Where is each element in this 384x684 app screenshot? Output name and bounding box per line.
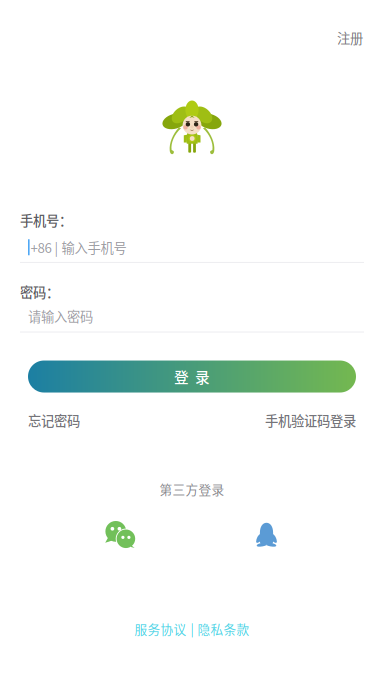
staticText: 第三方登录: [159, 480, 224, 498]
staticText: 登 录: [174, 366, 210, 387]
staticText: 手机验证码登录: [265, 410, 356, 430]
button[interactable]: 手机验证码登录: [265, 410, 356, 430]
staticText: 服务协议: [134, 620, 186, 638]
button[interactable]: QQ login: [256, 522, 278, 547]
staticText: 手机号：: [20, 210, 72, 230]
button[interactable]: 注册: [316, 19, 384, 56]
button[interactable]: 忘记密码: [28, 410, 80, 430]
staticText: 密码：: [20, 282, 59, 301]
staticText: |: [190, 620, 193, 638]
staticText: 请输入密码: [28, 306, 93, 325]
button[interactable]: 登 录: [28, 360, 356, 392]
staticText: 注册: [337, 28, 363, 47]
button[interactable]: WeChat login: [105, 521, 136, 548]
staticText: +86 | 输入手机号: [31, 238, 127, 257]
button[interactable]: 隐私条款: [197, 620, 249, 638]
button[interactable]: 服务协议: [134, 620, 186, 638]
staticText: 忘记密码: [28, 410, 80, 430]
staticText: 隐私条款: [197, 620, 249, 638]
